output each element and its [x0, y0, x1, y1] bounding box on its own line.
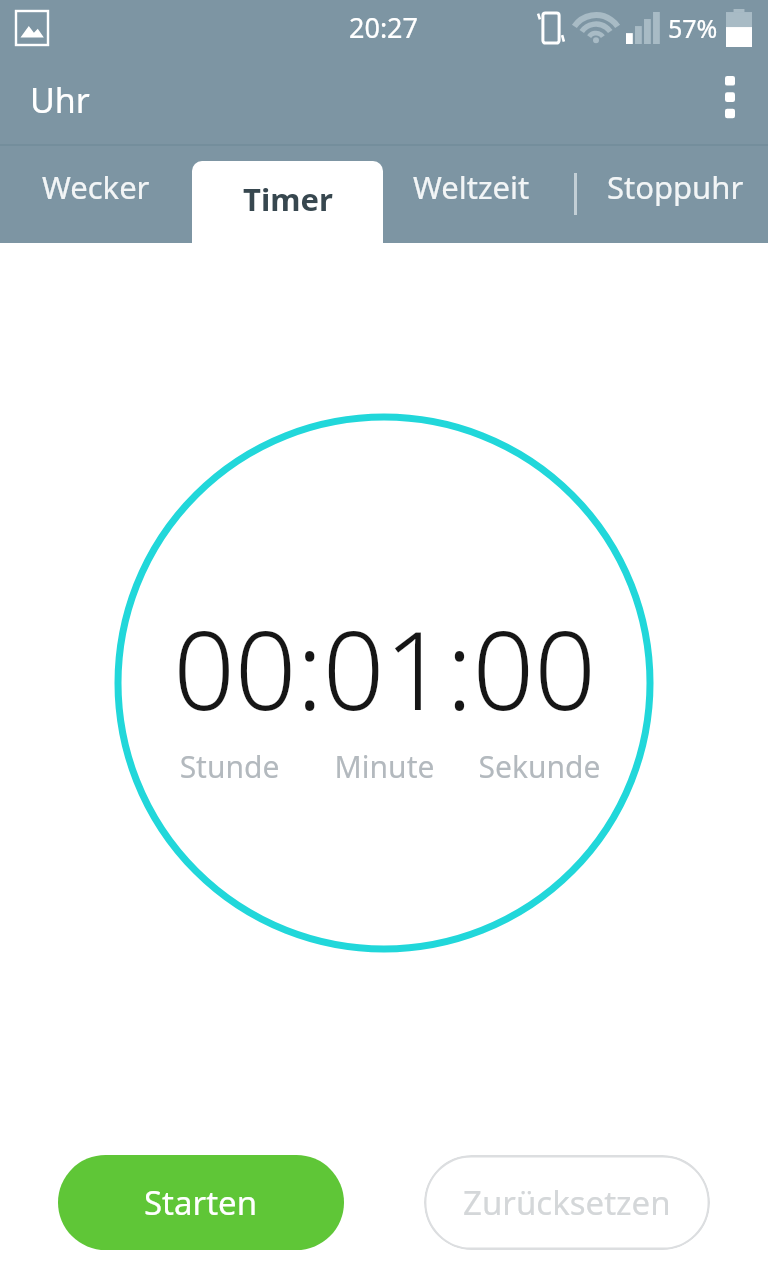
button[interactable]: Wecker: [0, 146, 192, 243]
button[interactable]: Stoppuhr: [575, 146, 768, 243]
staticText: 57%: [668, 11, 718, 45]
button[interactable]: 00:01:00: [152, 595, 617, 787]
button[interactable]: Timer: [192, 146, 383, 243]
button[interactable]: Weitere Optionen: [696, 64, 768, 136]
staticText: Sekunde: [462, 746, 617, 787]
staticText: Minute: [307, 746, 462, 787]
staticText: Starten: [144, 1180, 258, 1225]
staticText: Timer: [243, 178, 333, 220]
button[interactable]: Starten: [58, 1155, 344, 1250]
staticText: Wecker: [42, 166, 150, 208]
staticText: Stoppuhr: [607, 166, 744, 208]
button[interactable]: Weltzeit: [383, 146, 575, 243]
staticText: Stunde: [152, 746, 307, 787]
staticText: 00:01:00: [173, 595, 596, 742]
staticText: Weltzeit: [413, 166, 530, 208]
staticText: 20:27: [349, 9, 419, 46]
staticText: Zurücksetzen: [463, 1180, 671, 1225]
staticText: Uhr: [30, 77, 90, 123]
button[interactable]: Zurücksetzen: [424, 1155, 710, 1250]
